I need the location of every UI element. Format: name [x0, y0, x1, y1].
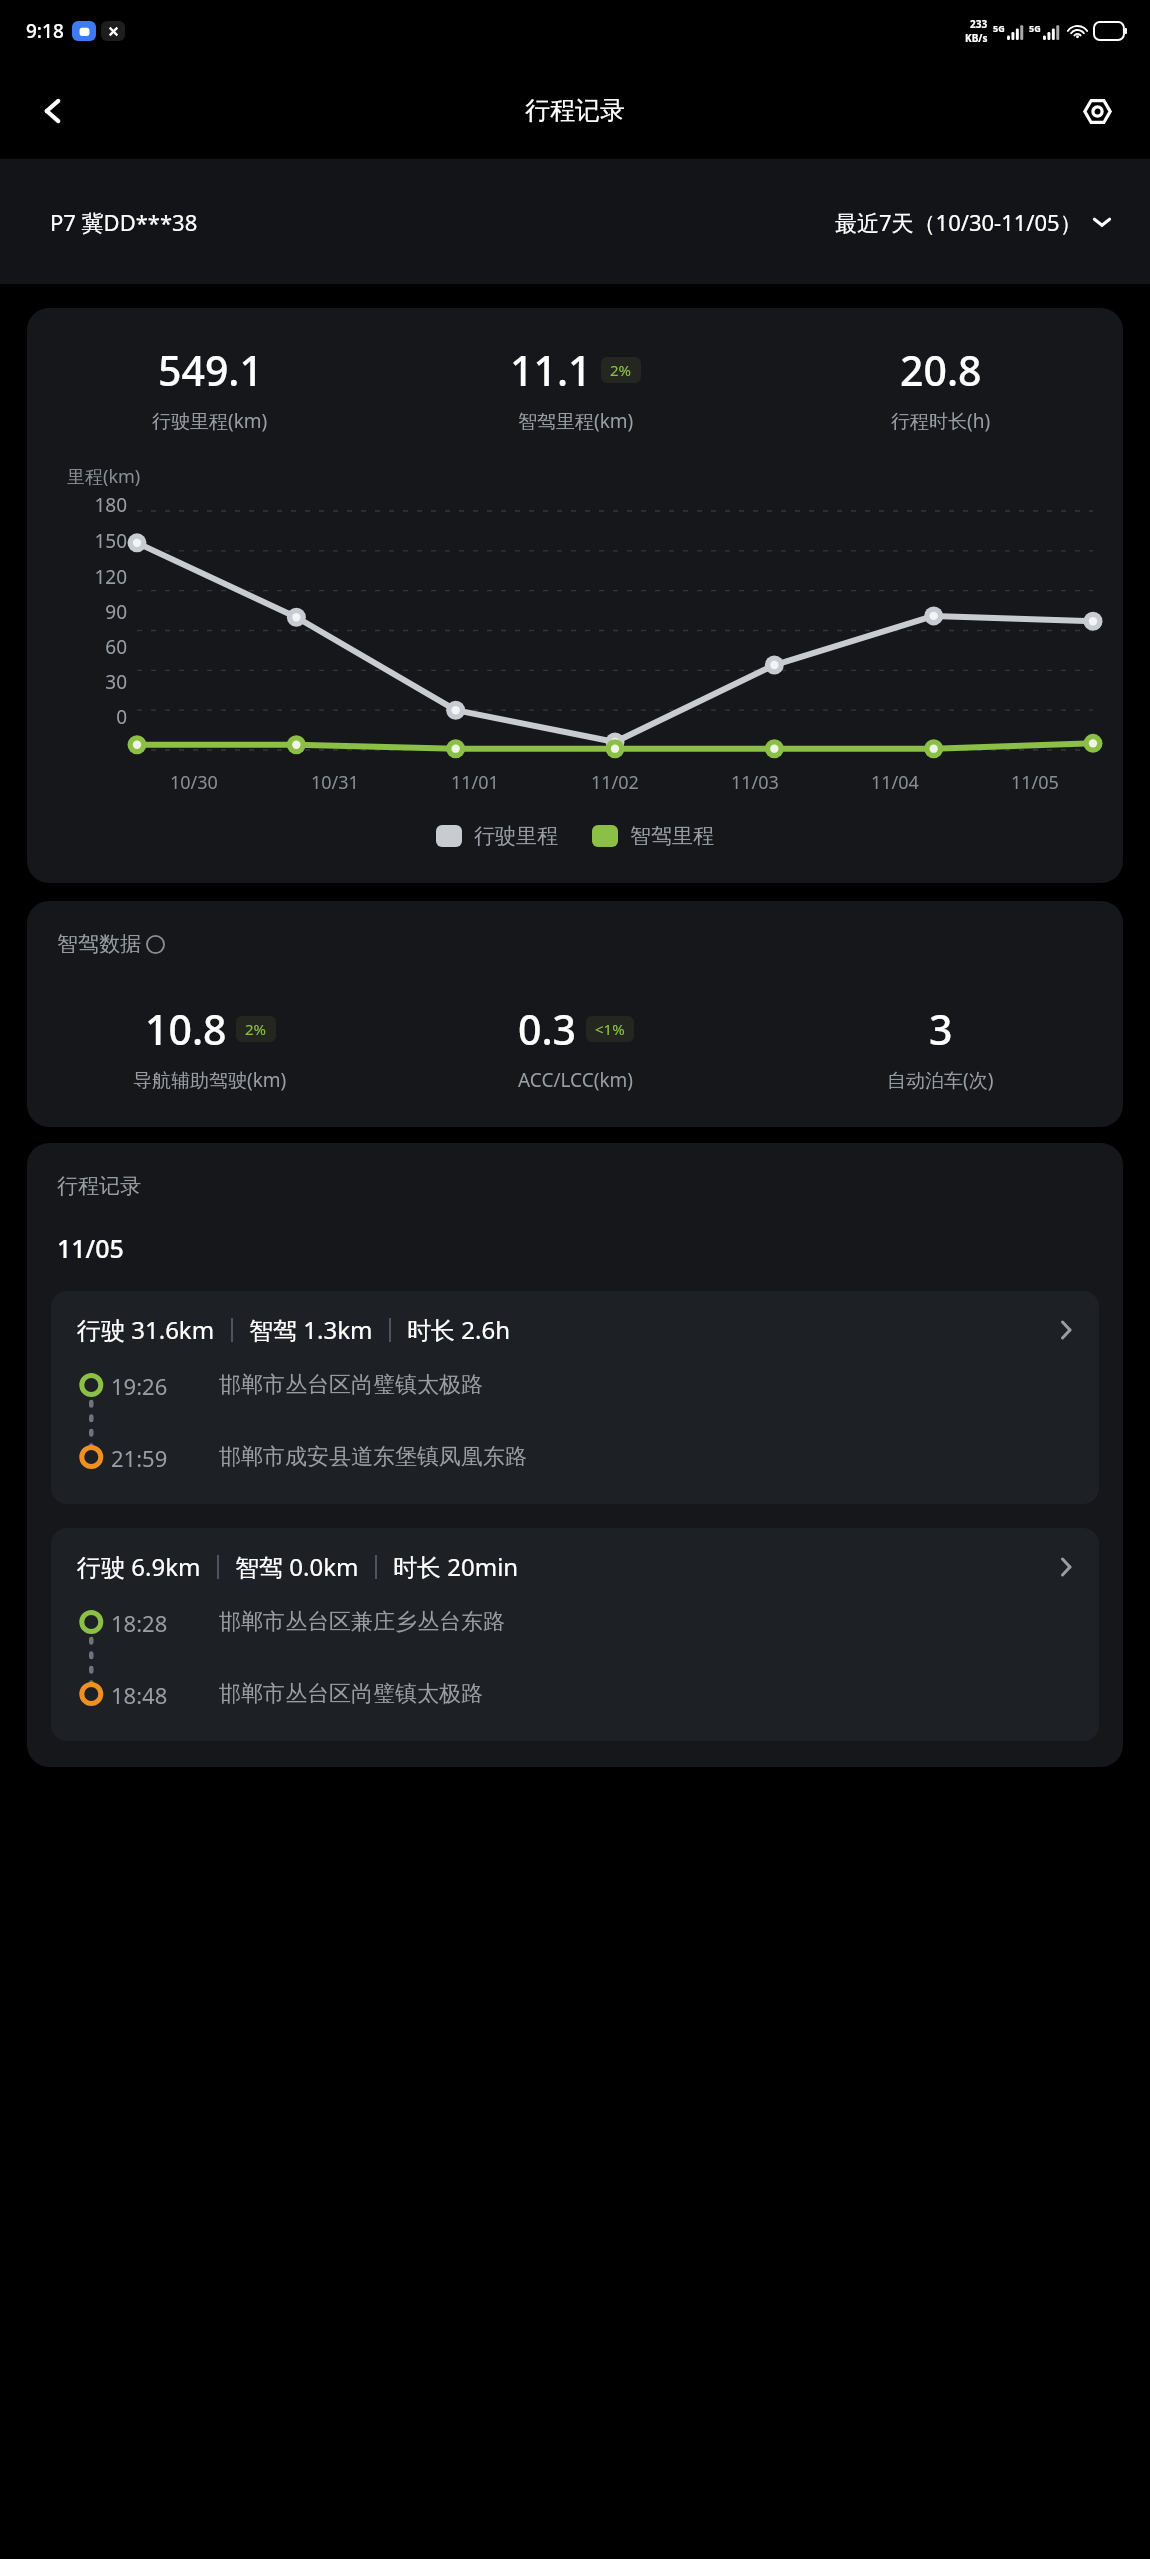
staticText: 10.8 — [145, 1001, 227, 1057]
staticText: 180 — [94, 492, 127, 518]
staticText: 行程时长(h) — [891, 408, 991, 434]
staticText: 智驾里程 — [630, 823, 714, 849]
staticText: 行驶 6.9km — [77, 1550, 201, 1583]
staticText: 自动泊车(次) — [887, 1067, 994, 1093]
staticText: 行驶里程(km) — [152, 408, 268, 434]
staticText: 智驾里程(km) — [518, 408, 634, 434]
staticText: 18:28 — [111, 1608, 219, 1638]
button[interactable]: 最近7天（10/30-11/05） — [835, 207, 1112, 237]
button[interactable]: P7 冀DD***38 — [50, 207, 198, 237]
staticText: 邯郸市丛台区兼庄乡丛台东路 — [219, 1608, 505, 1636]
staticText: 智驾 1.3km — [249, 1313, 373, 1346]
button[interactable]: 行驶 31.6km — [51, 1291, 1099, 1504]
staticText: 11/01 — [451, 770, 499, 795]
button[interactable]: 549.1 — [27, 308, 1123, 883]
staticText: 行程记录 — [525, 95, 625, 126]
staticText: 行驶里程 — [474, 823, 558, 849]
staticText: 3 — [929, 1001, 953, 1057]
button[interactable]: 行驶 6.9km — [51, 1528, 1099, 1741]
staticText: P7 冀DD***38 — [50, 207, 198, 237]
staticText: 里程(km) — [67, 464, 141, 489]
staticText: 30 — [105, 669, 127, 695]
staticText: 0.3 — [518, 1001, 577, 1057]
staticText: 2% — [245, 1019, 267, 1039]
staticText: 5G — [1029, 22, 1041, 34]
staticText: 18:48 — [111, 1680, 219, 1710]
button[interactable]: Settings — [1070, 84, 1124, 138]
staticText: 549.1 — [158, 342, 263, 398]
staticText: KB/s — [965, 31, 988, 45]
staticText: 10/31 — [311, 770, 359, 795]
staticText: 20.8 — [900, 342, 982, 398]
staticText: 5G — [993, 22, 1005, 34]
staticText: 行驶 31.6km — [77, 1313, 215, 1346]
staticText: 9:18 — [26, 18, 64, 44]
button[interactable]: Back — [26, 84, 80, 138]
staticText: 行程记录 — [57, 1173, 141, 1199]
staticText: 120 — [94, 564, 127, 590]
staticText: 11.1 — [510, 342, 592, 398]
staticText: 时长 2.6h — [407, 1313, 510, 1346]
staticText: 150 — [94, 528, 127, 554]
staticText: 90 — [105, 599, 127, 625]
staticText: 11/04 — [871, 770, 919, 795]
staticText: 11/02 — [591, 770, 639, 795]
staticText: 最近7天（10/30-11/05） — [835, 207, 1082, 237]
staticText: 11/03 — [731, 770, 779, 795]
staticText: 21:59 — [111, 1443, 219, 1473]
staticText: 233 — [970, 17, 988, 31]
staticText: 邯郸市成安县道东堡镇凤凰东路 — [219, 1443, 527, 1471]
staticText: 60 — [105, 634, 127, 660]
staticText: 时长 20min — [393, 1550, 519, 1583]
staticText: 11/05 — [1011, 770, 1059, 795]
staticText: 19:26 — [111, 1371, 219, 1401]
staticText: 11/05 — [57, 1231, 124, 1265]
staticText: ACC/LCC(km) — [518, 1067, 633, 1093]
staticText: 智驾数据 — [57, 931, 141, 957]
staticText: <1% — [595, 1019, 625, 1039]
staticText: 10/30 — [170, 770, 218, 795]
staticText: 智驾 0.0km — [235, 1550, 359, 1583]
staticText: 0 — [116, 704, 127, 730]
staticText: 2% — [610, 360, 632, 380]
staticText: 邯郸市丛台区尚璧镇太极路 — [219, 1680, 483, 1708]
staticText: 邯郸市丛台区尚璧镇太极路 — [219, 1371, 483, 1399]
staticText: 导航辅助驾驶(km) — [133, 1067, 287, 1093]
other: Info — [146, 935, 165, 954]
button[interactable]: 智驾数据 — [27, 901, 1123, 1127]
